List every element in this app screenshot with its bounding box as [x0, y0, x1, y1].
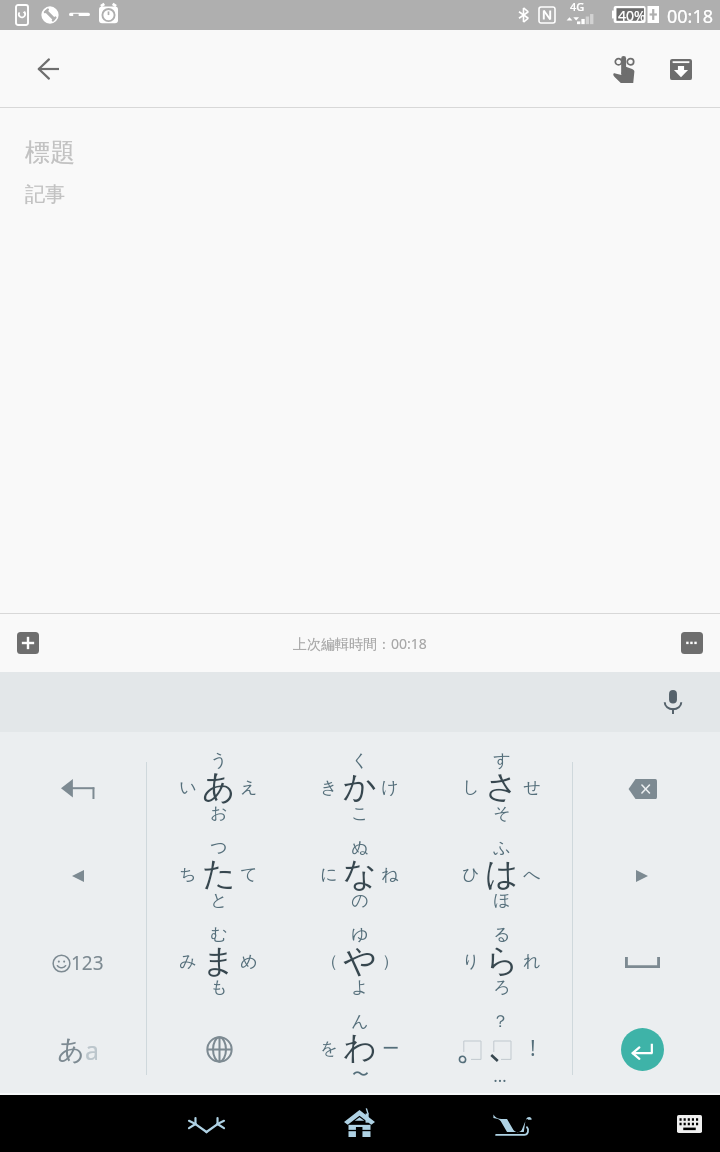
- staticText: そ: [493, 803, 511, 824]
- button[interactable]: Voice input: [652, 681, 694, 723]
- staticText: つ: [210, 837, 228, 858]
- button[interactable]: は: [431, 832, 573, 919]
- button[interactable]: Symbols and numbers: [9, 919, 147, 1006]
- button[interactable]: Home: [329, 1096, 389, 1151]
- staticText: 〜: [352, 1064, 369, 1085]
- staticText: し: [462, 777, 480, 798]
- staticText: の: [351, 890, 369, 911]
- staticText: ま: [202, 940, 236, 982]
- staticText: る: [493, 924, 511, 945]
- staticText: め: [240, 951, 258, 972]
- staticText: を: [320, 1038, 338, 1059]
- button[interactable]: Backspace: [573, 745, 711, 832]
- staticText: 00:18: [667, 4, 714, 29]
- staticText: 123: [71, 950, 104, 976]
- button[interactable]: Archive: [657, 45, 705, 93]
- button[interactable]: Change language: [148, 1006, 290, 1093]
- button[interactable]: か: [289, 745, 431, 832]
- staticText: か: [343, 766, 377, 808]
- staticText: き: [320, 777, 338, 798]
- button[interactable]: Reminder: [600, 45, 648, 93]
- staticText: に: [320, 864, 338, 885]
- button[interactable]: ら: [431, 919, 573, 1006]
- staticText: !: [530, 1034, 536, 1063]
- button[interactable]: あ: [148, 745, 290, 832]
- button[interactable]: ま: [148, 919, 290, 1006]
- staticText: 記事: [25, 182, 65, 207]
- button[interactable]: More options: [670, 621, 714, 665]
- staticText: あ: [57, 1033, 85, 1067]
- staticText: ち: [179, 864, 197, 885]
- staticText: ん: [351, 1011, 369, 1032]
- staticText: …: [493, 1064, 507, 1087]
- staticText: と: [210, 890, 228, 911]
- staticText: は: [485, 853, 519, 895]
- staticText: た: [202, 853, 236, 895]
- staticText: て: [240, 864, 258, 885]
- staticText: い: [179, 777, 197, 798]
- staticText: 40%: [618, 6, 646, 23]
- staticText: り: [462, 951, 480, 972]
- button[interactable]: Back: [24, 45, 72, 93]
- staticText: あ: [202, 766, 236, 808]
- staticText: ぬ: [351, 837, 369, 858]
- staticText: お: [210, 803, 228, 824]
- staticText: こ: [351, 803, 369, 824]
- staticText: （: [321, 951, 338, 972]
- staticText: な: [343, 853, 377, 895]
- staticText: ー: [382, 1038, 399, 1059]
- staticText: わ: [343, 1027, 377, 1069]
- staticText: ほ: [493, 890, 511, 911]
- staticText: 上次編輯時間：00:18: [293, 634, 427, 653]
- staticText: す: [493, 750, 511, 771]
- staticText: ら: [485, 940, 519, 982]
- button[interactable]: わ: [289, 1006, 431, 1093]
- staticText: け: [381, 777, 399, 798]
- staticText: ね: [381, 864, 399, 885]
- button[interactable]: や: [289, 919, 431, 1006]
- staticText: ？: [492, 1011, 509, 1032]
- button[interactable]: た: [148, 832, 290, 919]
- button[interactable]: Space: [573, 919, 711, 1006]
- staticText: れ: [523, 951, 541, 972]
- staticText: や: [343, 940, 377, 982]
- staticText: む: [210, 924, 228, 945]
- button[interactable]: Switch input mode: [9, 1006, 147, 1093]
- button[interactable]: Switch keyboard: [664, 1096, 714, 1151]
- staticText: く: [351, 750, 369, 771]
- staticText: へ: [523, 864, 541, 885]
- staticText: よ: [351, 977, 369, 998]
- staticText: み: [179, 951, 197, 972]
- staticText: も: [210, 977, 228, 998]
- staticText: ろ: [493, 977, 511, 998]
- staticText: ）: [382, 951, 399, 972]
- button[interactable]: Recents: [482, 1097, 542, 1152]
- button[interactable]: さ: [431, 745, 573, 832]
- staticText: ゆ: [351, 924, 369, 945]
- button[interactable]: な: [289, 832, 431, 919]
- button[interactable]: Cursor left: [9, 832, 147, 919]
- staticText: ひ: [462, 864, 480, 885]
- button[interactable]: ？: [431, 1006, 573, 1093]
- button[interactable]: Enter: [573, 1006, 711, 1093]
- staticText: 4G: [570, 0, 585, 14]
- staticText: せ: [523, 777, 541, 798]
- staticText: さ: [485, 766, 519, 808]
- staticText: え: [240, 777, 258, 798]
- staticText: 標題: [25, 137, 75, 168]
- button[interactable]: Back: [176, 1097, 236, 1152]
- staticText: う: [210, 750, 228, 771]
- button[interactable]: Cursor right: [573, 832, 711, 919]
- staticText: a: [85, 1033, 100, 1067]
- staticText: ふ: [493, 837, 511, 858]
- button[interactable]: Undo: [9, 745, 147, 832]
- button[interactable]: Add: [6, 621, 50, 665]
